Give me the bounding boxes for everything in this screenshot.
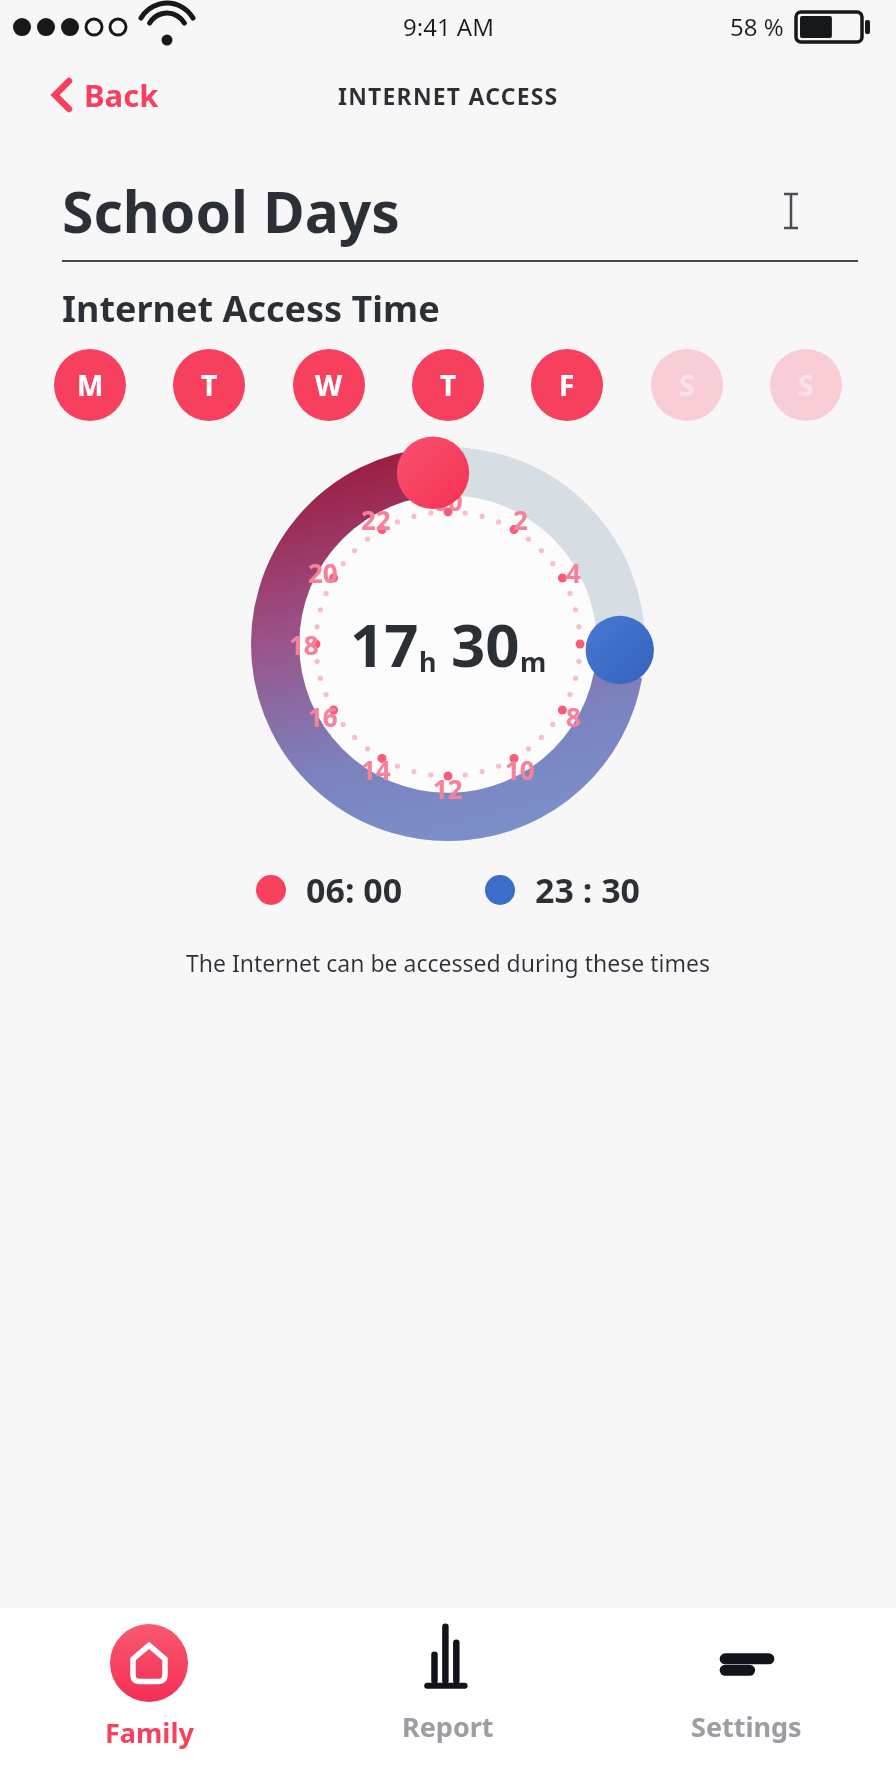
staticText: 17 — [350, 603, 419, 685]
button[interactable]: 23 : 30 — [479, 861, 647, 919]
button[interactable]: F — [531, 349, 603, 421]
staticText: Family — [105, 1714, 194, 1751]
staticText: m — [520, 643, 547, 680]
staticText: F — [559, 366, 575, 404]
staticText: 8 — [566, 699, 581, 734]
staticText: 20 — [308, 555, 338, 590]
staticText: 14 — [361, 752, 391, 787]
other: Report — [422, 1638, 474, 1690]
staticText: 12 — [433, 771, 463, 806]
button[interactable]: M — [54, 349, 126, 421]
staticText: Report — [402, 1708, 494, 1745]
staticText: M — [77, 366, 104, 404]
staticText: 22 — [361, 502, 391, 537]
button[interactable]: W — [293, 349, 365, 421]
staticText: 18 — [289, 627, 319, 662]
staticText: 4 — [566, 555, 581, 590]
button[interactable]: Family — [0, 1608, 298, 1778]
staticText: The Internet can be accessed during thes… — [0, 947, 896, 978]
staticText: Back — [84, 74, 159, 116]
staticText: 6 — [585, 627, 600, 662]
staticText: School Days — [62, 172, 400, 250]
staticText: 30 — [451, 603, 520, 685]
staticText: 9:41 AM — [403, 10, 494, 43]
staticText: W — [315, 366, 343, 404]
staticText: T — [440, 366, 457, 404]
staticText: T — [201, 366, 218, 404]
button[interactable]: S — [651, 349, 723, 421]
staticText: Settings — [691, 1708, 802, 1745]
staticText: S — [679, 366, 695, 404]
staticText: 16 — [308, 699, 338, 734]
button[interactable]: T — [173, 349, 245, 421]
staticText: Internet Access Time — [62, 284, 440, 333]
staticText: 58 % — [730, 10, 784, 43]
staticText: 23 : 30 — [535, 867, 641, 913]
button[interactable]: T — [412, 349, 484, 421]
staticText: S — [798, 366, 814, 404]
staticText: 2 — [513, 502, 528, 537]
button[interactable]: Settings — [597, 1608, 896, 1778]
other: Family — [110, 1624, 188, 1702]
staticText: 10 — [505, 752, 535, 787]
button[interactable]: Report — [298, 1608, 597, 1778]
staticText: 00 — [433, 483, 463, 518]
staticText: h — [419, 643, 437, 680]
other: Settings — [721, 1638, 773, 1690]
button[interactable]: Back — [44, 68, 167, 122]
button[interactable]: 06: 00 — [250, 861, 409, 919]
staticText: INTERNET ACCESS — [338, 80, 559, 111]
button[interactable]: S — [770, 349, 842, 421]
staticText: 06: 00 — [306, 867, 403, 913]
